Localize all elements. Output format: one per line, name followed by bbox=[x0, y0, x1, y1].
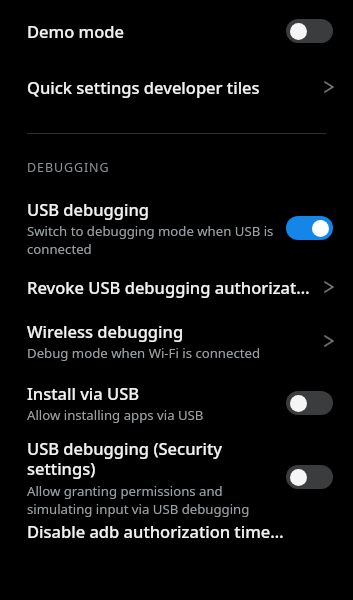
staticText: Switch to debugging mode when USB is con… bbox=[27, 222, 274, 258]
button[interactable]: Quick settings developer tiles bbox=[0, 62, 353, 111]
other: Revoke USB debugging authorizations bbox=[320, 277, 340, 297]
staticText: Demo mode bbox=[27, 20, 124, 42]
other: Wireless debugging bbox=[320, 331, 340, 351]
button[interactable]: USB debugging (Security settings) bbox=[0, 434, 353, 520]
staticText: Revoke USB debugging authorizations bbox=[27, 276, 314, 298]
staticText: USB debugging (Security settings) bbox=[27, 437, 274, 480]
button[interactable]: USB debugging bbox=[0, 192, 353, 264]
other: Quick settings developer tiles bbox=[320, 77, 340, 97]
button[interactable]: Wireless debugging bbox=[0, 310, 353, 372]
staticText: USB debugging bbox=[27, 198, 150, 220]
staticText: DEBUGGING bbox=[27, 159, 110, 176]
staticText: Quick settings developer tiles bbox=[27, 76, 260, 98]
staticText: Wireless debugging bbox=[27, 320, 184, 342]
button[interactable]: Disable adb authorization time… bbox=[0, 520, 353, 560]
staticText: Allow installing apps via USB bbox=[27, 406, 204, 424]
button[interactable]: Revoke USB debugging authorizations bbox=[0, 264, 353, 310]
staticText: Allow granting permissions and simulatin… bbox=[27, 482, 250, 518]
button[interactable]: Install via USB bbox=[0, 372, 353, 434]
staticText: Debug mode when Wi-Fi is connected bbox=[27, 344, 261, 362]
button[interactable]: Demo mode bbox=[0, 0, 353, 62]
staticText: Install via USB bbox=[27, 382, 140, 404]
staticText: Disable adb authorization time… bbox=[27, 520, 284, 542]
